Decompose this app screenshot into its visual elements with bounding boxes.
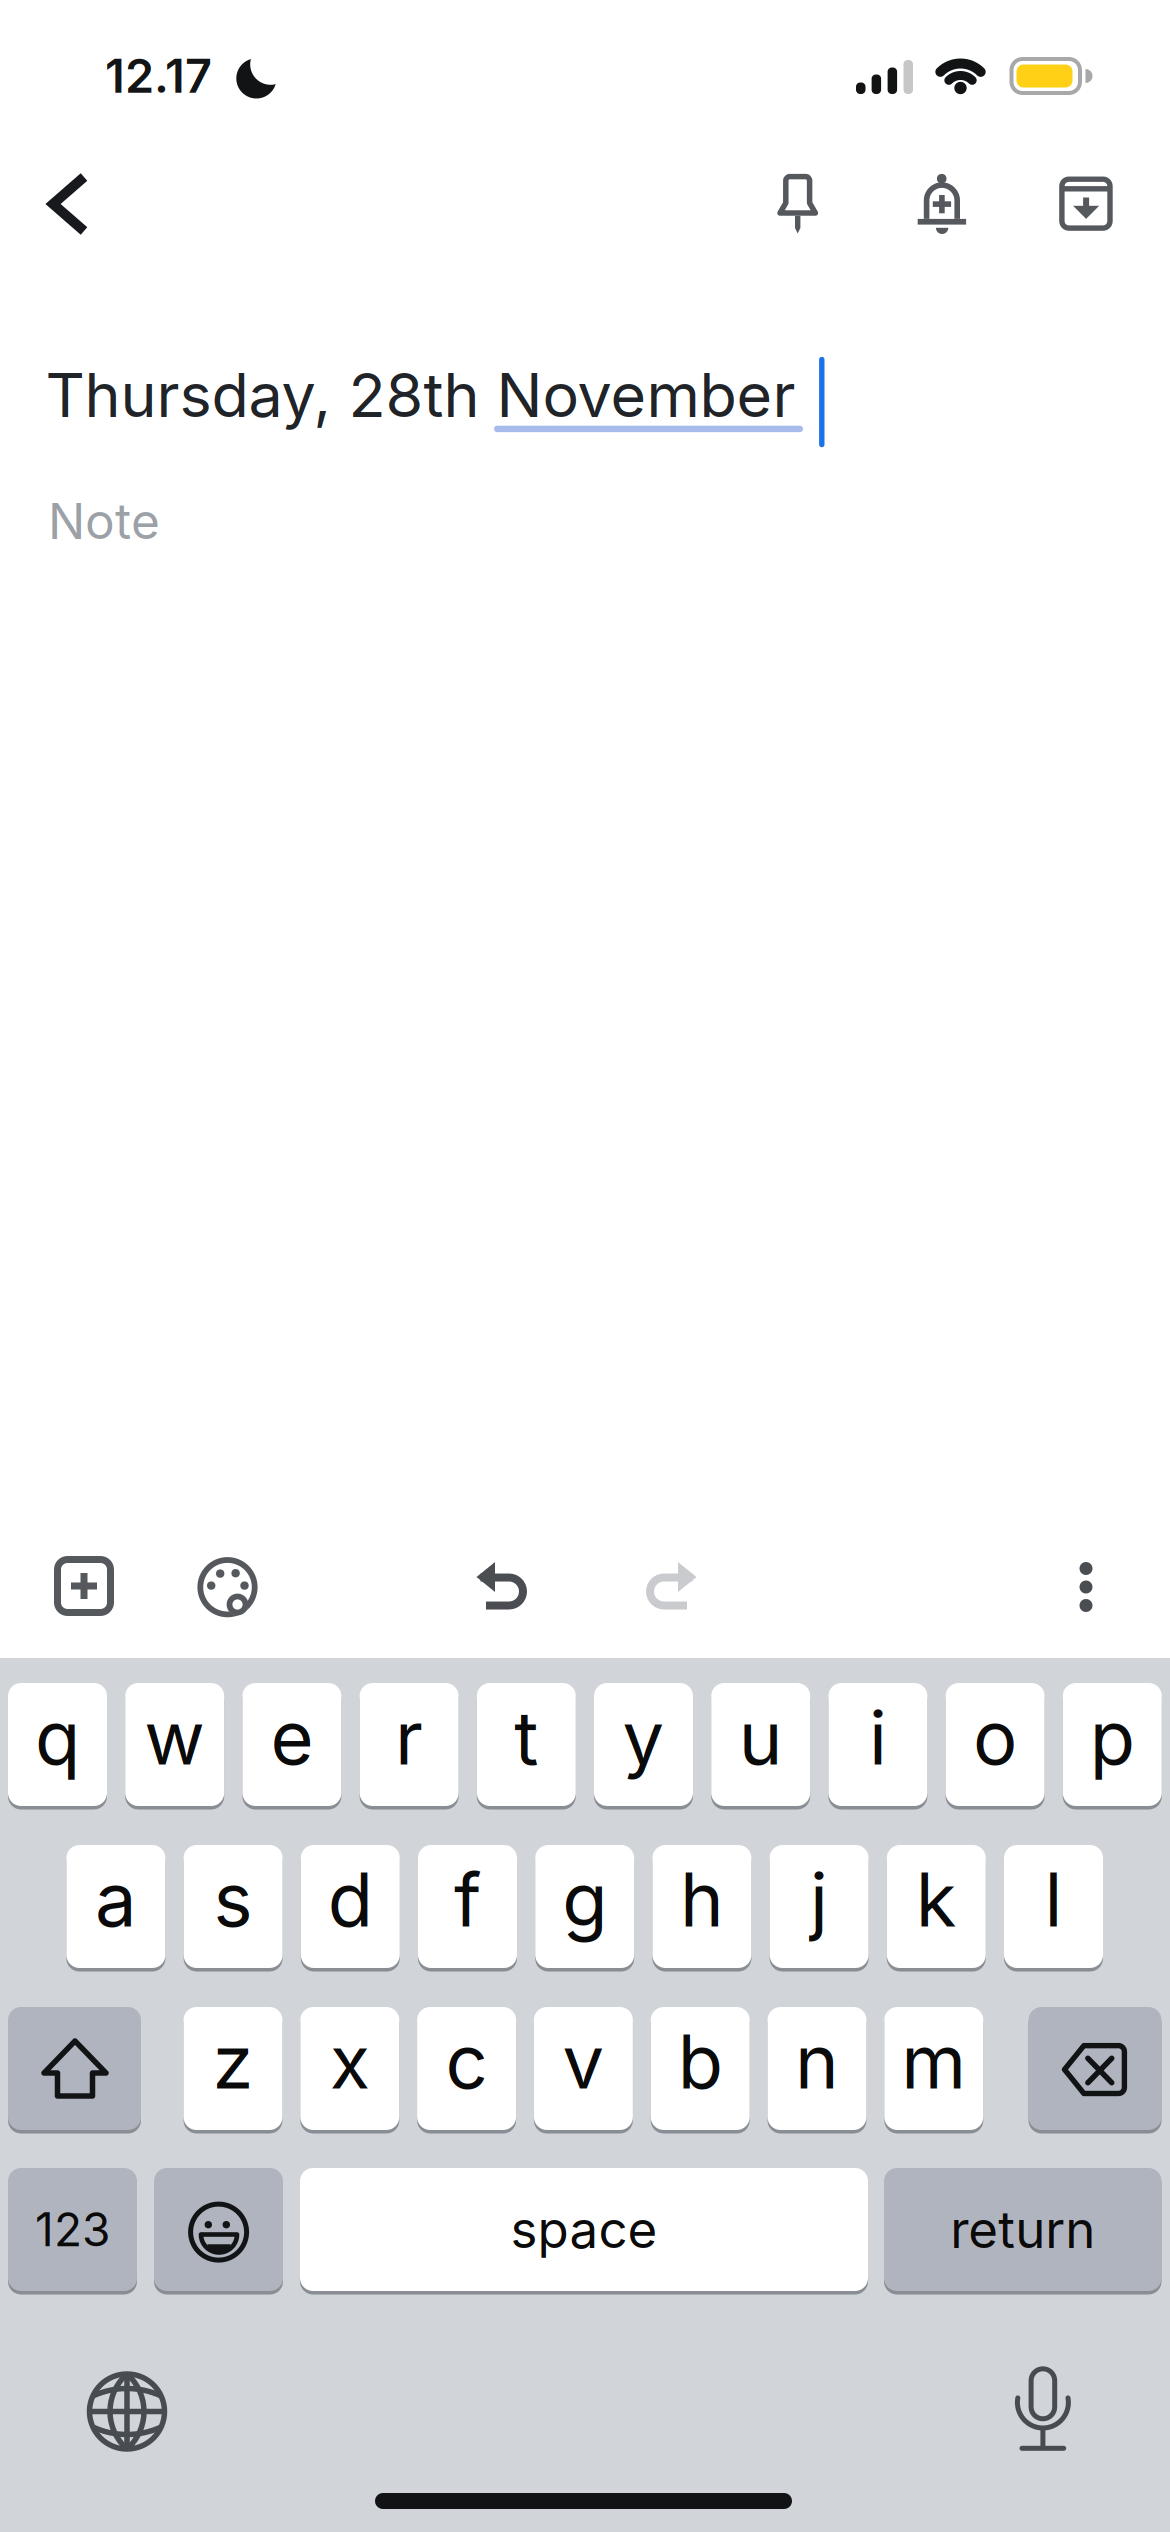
button[interactable]: w — [125, 1683, 224, 1806]
staticText: k — [916, 1855, 957, 1944]
button[interactable]: Theme — [183, 1543, 271, 1631]
staticText: a — [95, 1855, 137, 1944]
button[interactable]: Undo — [458, 1541, 546, 1629]
staticText: b — [678, 2017, 723, 2106]
button[interactable]: Shift — [8, 2007, 141, 2130]
button[interactable]: Back — [22, 159, 112, 249]
staticText: Thursday, 28th November — [45, 358, 795, 432]
button[interactable]: n — [767, 2007, 866, 2130]
button[interactable]: u — [711, 1683, 810, 1806]
button[interactable]: space — [300, 2168, 868, 2291]
button[interactable]: Dictate — [987, 2355, 1097, 2465]
staticText: u — [739, 1693, 783, 1782]
staticText: return — [950, 2199, 1095, 2260]
staticText: c — [446, 2017, 488, 2106]
button[interactable]: Redo — [625, 1541, 713, 1629]
staticText: w — [144, 1693, 205, 1782]
button[interactable]: Pin — [754, 160, 842, 248]
staticText: o — [973, 1693, 1017, 1782]
staticText: f — [454, 1855, 481, 1944]
staticText: s — [214, 1855, 253, 1944]
button[interactable]: Emoji — [154, 2168, 283, 2291]
button[interactable]: y — [594, 1683, 693, 1806]
button[interactable]: j — [770, 1845, 869, 1968]
button[interactable]: Next keyboard — [72, 2356, 182, 2466]
staticText: Note — [48, 491, 160, 551]
button[interactable]: f — [418, 1845, 517, 1968]
staticText: r — [395, 1693, 423, 1782]
staticText: d — [328, 1855, 373, 1944]
staticText: 12.17 — [105, 47, 212, 104]
staticText: space — [510, 2199, 657, 2260]
staticText: l — [1044, 1855, 1062, 1944]
button[interactable]: i — [828, 1683, 927, 1806]
button[interactable]: v — [534, 2007, 633, 2130]
staticText: n — [795, 2017, 839, 2106]
button[interactable]: t — [477, 1683, 576, 1806]
button[interactable]: z — [183, 2007, 282, 2130]
button[interactable]: Archive — [1042, 160, 1130, 248]
staticText: m — [901, 2017, 966, 2106]
button[interactable]: p — [1063, 1683, 1162, 1806]
button[interactable]: m — [884, 2007, 983, 2130]
staticText: t — [514, 1693, 538, 1782]
button[interactable]: h — [652, 1845, 751, 1968]
button[interactable]: x — [300, 2007, 399, 2130]
staticText: p — [1090, 1693, 1135, 1782]
button[interactable]: Delete — [1028, 2007, 1161, 2130]
button[interactable]: o — [946, 1683, 1045, 1806]
staticText: v — [562, 2017, 604, 2106]
staticText: e — [270, 1693, 313, 1782]
staticText: x — [330, 2017, 370, 2106]
button[interactable]: g — [535, 1845, 634, 1968]
button[interactable]: b — [651, 2007, 750, 2130]
button[interactable]: return — [884, 2168, 1161, 2291]
button[interactable]: a — [66, 1845, 165, 1968]
staticText: q — [35, 1693, 80, 1782]
button[interactable]: Numbers — [8, 2168, 137, 2291]
staticText: z — [212, 2017, 253, 2106]
staticText: i — [869, 1693, 887, 1782]
staticText: j — [810, 1855, 828, 1944]
staticText: y — [622, 1693, 664, 1782]
button[interactable]: d — [301, 1845, 400, 1968]
button[interactable]: Add — [40, 1542, 128, 1630]
button[interactable]: r — [360, 1683, 459, 1806]
button[interactable]: Add reminder — [898, 160, 986, 248]
staticText: h — [680, 1855, 724, 1944]
button[interactable]: s — [184, 1845, 283, 1968]
button[interactable]: More options — [1046, 1543, 1126, 1631]
staticText: g — [562, 1855, 607, 1944]
button[interactable]: e — [242, 1683, 341, 1806]
button[interactable]: k — [887, 1845, 986, 1968]
button[interactable]: q — [8, 1683, 107, 1806]
button[interactable]: l — [1004, 1845, 1103, 1968]
staticText: 123 — [35, 2202, 110, 2257]
button[interactable]: c — [417, 2007, 516, 2130]
